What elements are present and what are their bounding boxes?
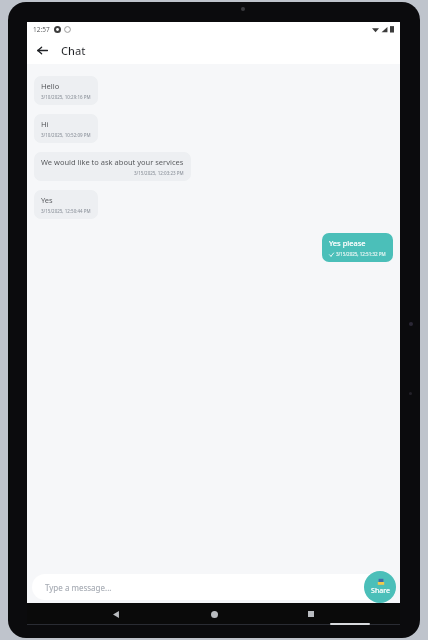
staticText: Yes [41, 195, 53, 205]
staticText: Share [371, 586, 390, 596]
button[interactable]: We would like to ask about your services [34, 152, 191, 181]
button[interactable]: Recents [302, 605, 320, 623]
staticText: We would like to ask about your services [41, 157, 184, 167]
button[interactable]: Type a message... [32, 574, 395, 600]
button[interactable]: Yes please [322, 233, 393, 262]
button[interactable]: Share [364, 571, 396, 603]
button[interactable]: Back [107, 605, 125, 623]
staticText: 3/10/2025, 10:52:09 PM [41, 132, 91, 138]
staticText: Type a message... [45, 582, 112, 593]
staticText: 3/15/2025, 12:50:44 PM [41, 208, 91, 214]
button[interactable]: Home [205, 605, 223, 623]
button[interactable]: Back [31, 39, 53, 61]
button[interactable]: Hello [34, 76, 98, 105]
button[interactable]: Yes [34, 190, 98, 219]
button[interactable]: Hi [34, 114, 98, 143]
staticText: 3/15/2025, 12:51:32 PM [336, 251, 386, 257]
staticText: Hi [41, 119, 49, 129]
staticText: 12:57 [33, 25, 50, 34]
staticText: 3/10/2025, 10:29:16 PM [41, 94, 91, 100]
staticText: Yes please [329, 238, 366, 248]
staticText: Chat [61, 43, 86, 58]
staticText: 3/15/2025, 12:03:23 PM [134, 170, 184, 176]
staticText: Hello [41, 81, 60, 91]
